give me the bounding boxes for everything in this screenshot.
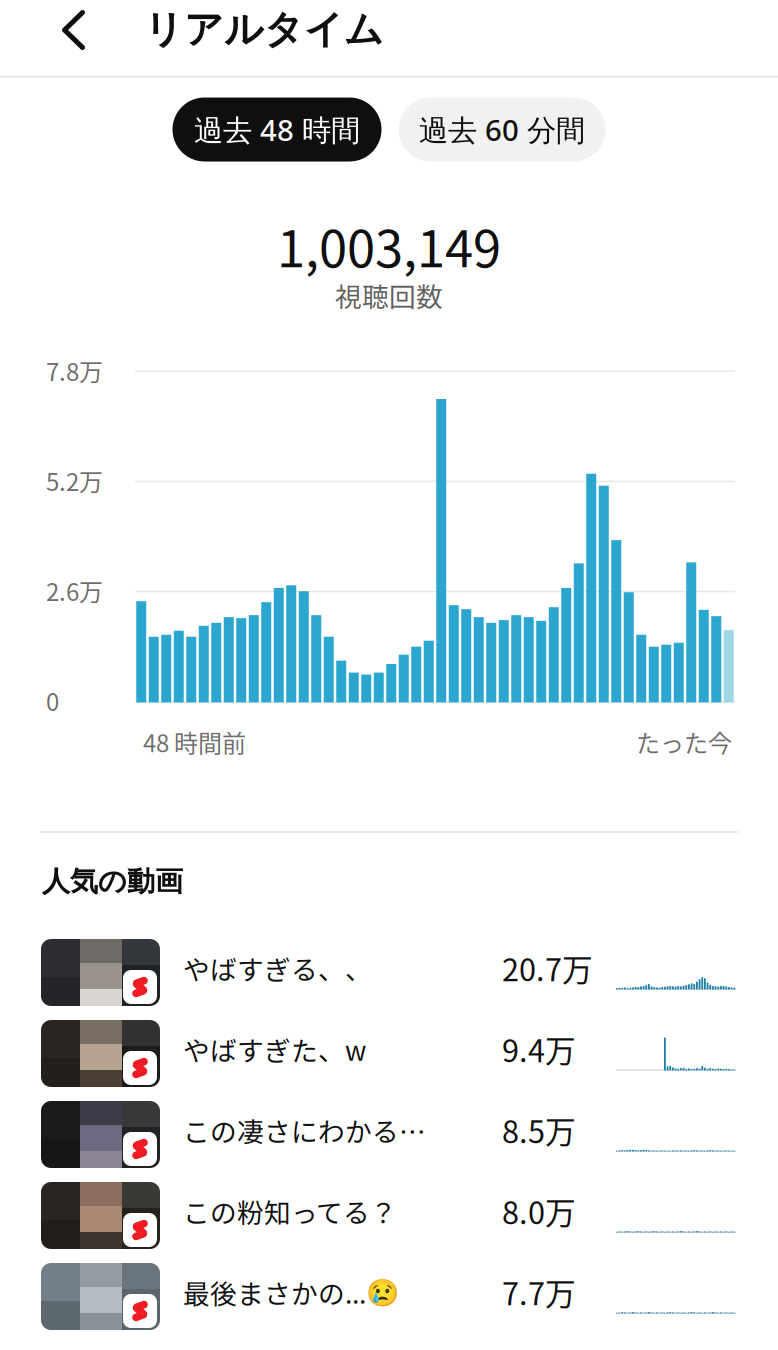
staticText: 8.0万 <box>502 1189 576 1233</box>
button[interactable]: 戻る <box>0 0 95 76</box>
staticText: 1,003,149 <box>277 208 501 282</box>
button[interactable]: この粉知ってる？ <box>0 1175 778 1256</box>
staticText: 0 <box>46 683 59 718</box>
button[interactable]: やばすぎる、、 <box>0 932 778 1013</box>
staticText: この粉知ってる？ <box>183 1192 397 1230</box>
staticText: やばすぎる、、 <box>183 949 372 987</box>
staticText: 8.5万 <box>502 1108 576 1152</box>
button[interactable]: この凄さにわかる… <box>0 1094 778 1175</box>
staticText: 過去 48 時間 <box>194 109 360 149</box>
button[interactable]: 過去 60 分間 <box>398 97 605 161</box>
staticText: 最後まさかの...😢 <box>183 1273 399 1311</box>
staticText: 48 時間前 <box>143 724 246 759</box>
staticText: 7.8万 <box>46 353 103 388</box>
staticText: 過去 60 分間 <box>419 109 585 149</box>
staticText: 7.7万 <box>502 1270 576 1314</box>
staticText: 視聴回数 <box>335 276 443 314</box>
staticText: 20.7万 <box>502 946 593 990</box>
staticText: 2.6万 <box>46 573 103 608</box>
button[interactable]: 最後まさかの...😢 <box>0 1256 778 1337</box>
staticText: リアルタイム <box>144 5 384 54</box>
button[interactable]: やばすぎた、w <box>0 1013 778 1094</box>
staticText: この凄さにわかる… <box>183 1111 426 1149</box>
staticText: 5.2万 <box>46 463 103 498</box>
staticText: やばすぎた、w <box>183 1030 366 1068</box>
button[interactable]: 過去 48 時間 <box>172 97 381 161</box>
staticText: たった今 <box>636 724 732 759</box>
staticText: 人気の動画 <box>42 864 183 899</box>
staticText: 9.4万 <box>502 1027 576 1071</box>
